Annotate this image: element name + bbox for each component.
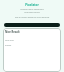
staticText: and pixel results bbox=[0, 11, 64, 14]
staticText: One Shot bbox=[5, 39, 14, 42]
staticText: Nice Result bbox=[5, 30, 20, 34]
staticText: number math operations bbox=[0, 8, 64, 11]
staticText: tap an option below to start working bbox=[0, 16, 64, 19]
staticText: Pixelator bbox=[0, 3, 64, 7]
staticText: Proper bbox=[5, 44, 12, 47]
button[interactable] bbox=[4, 23, 60, 27]
